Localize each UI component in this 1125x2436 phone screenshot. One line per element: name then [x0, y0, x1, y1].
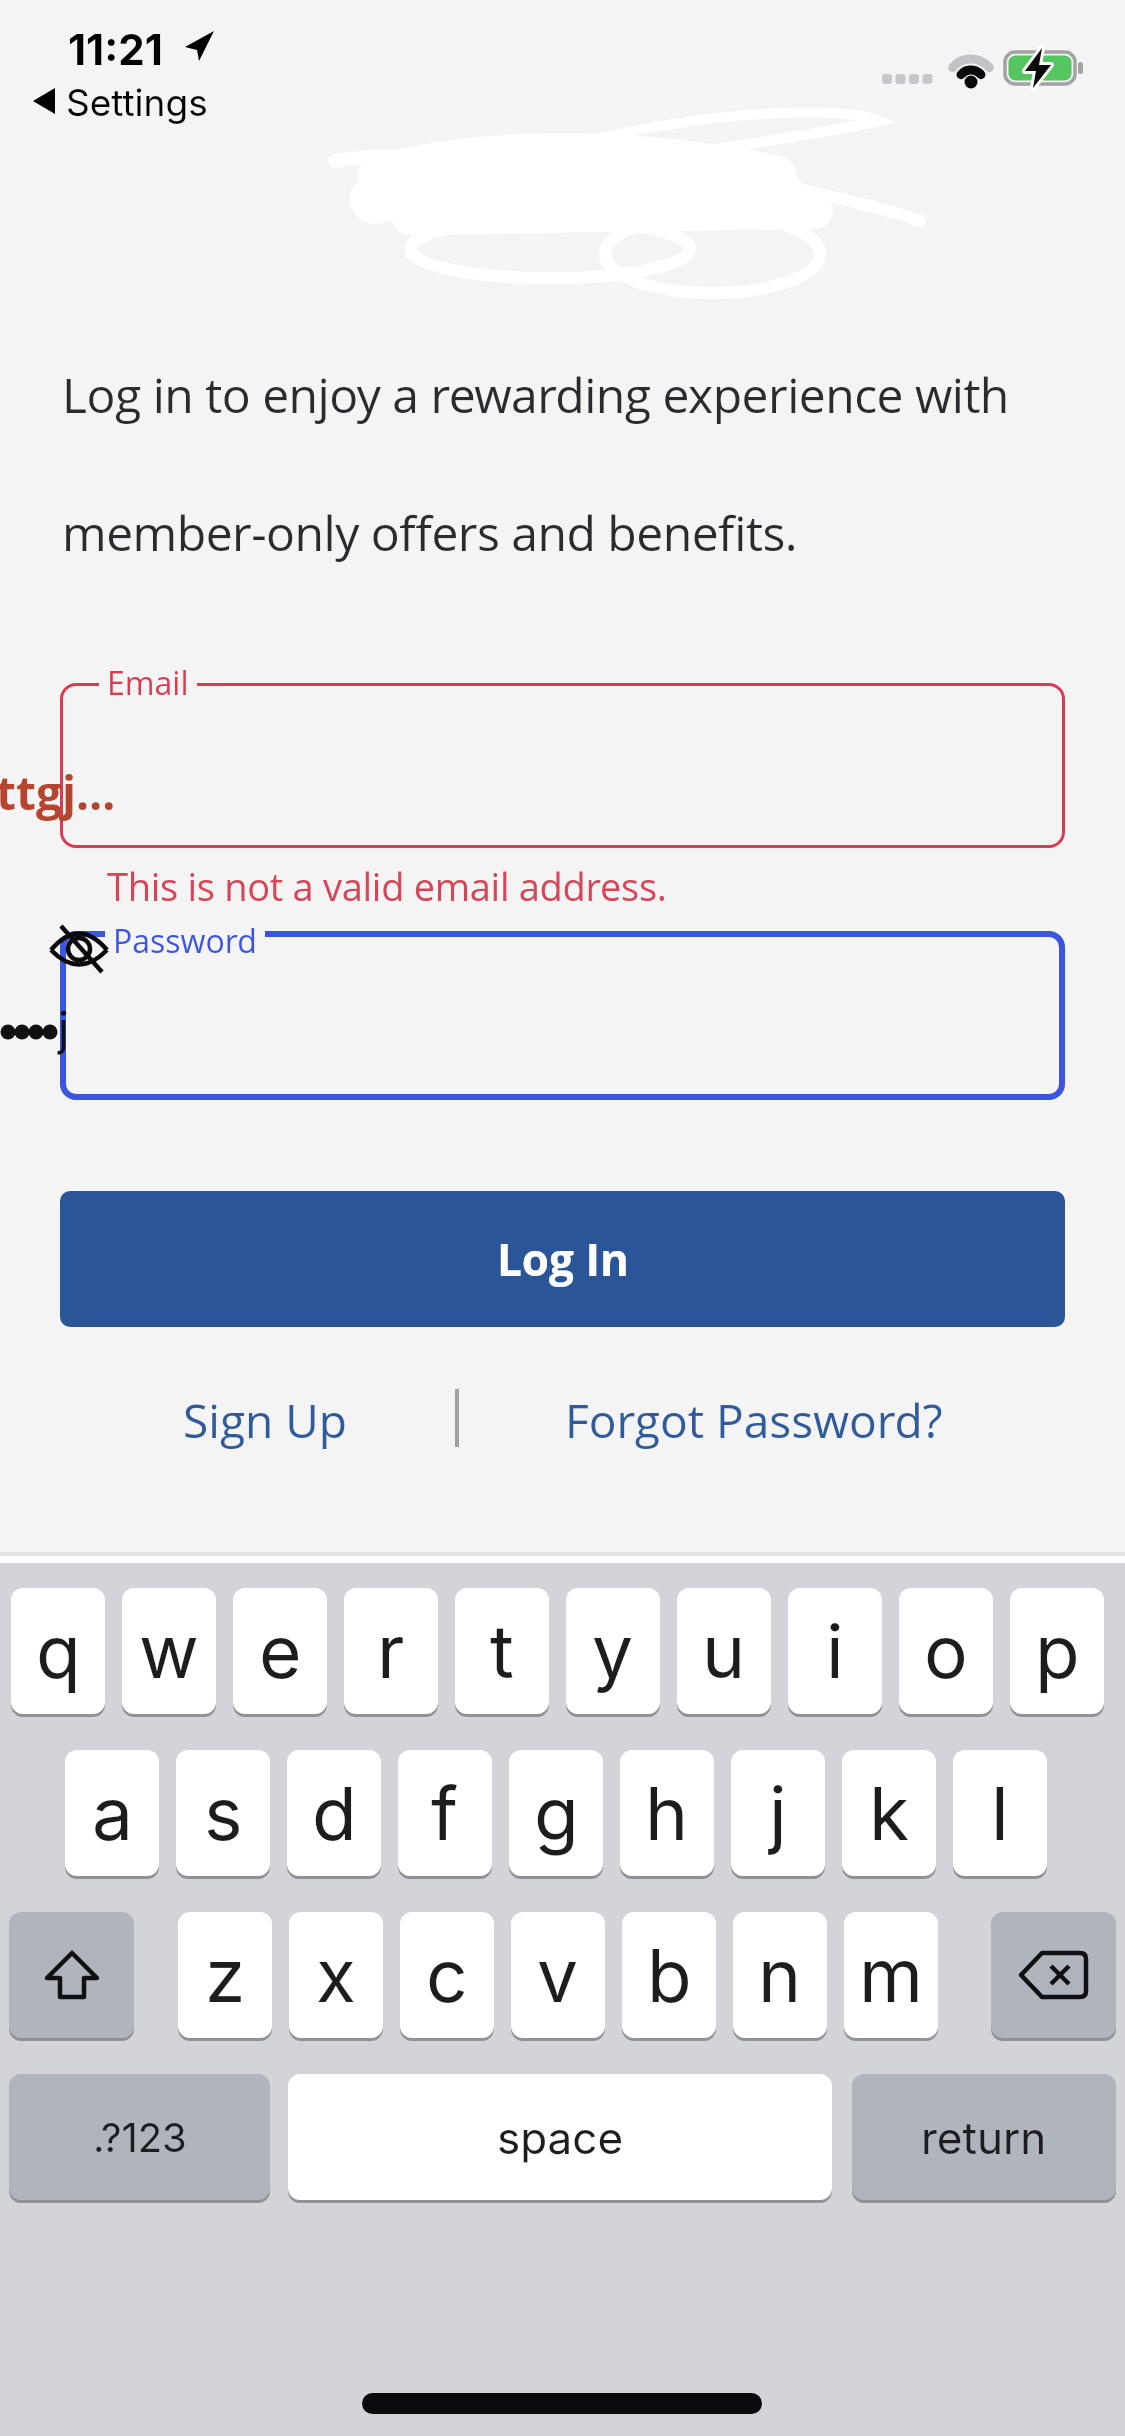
button[interactable]: p	[1010, 1588, 1104, 1714]
button[interactable]: o	[899, 1588, 993, 1714]
staticText: u	[702, 1607, 746, 1695]
staticText: y	[592, 1607, 634, 1695]
button[interactable]: i	[788, 1588, 882, 1714]
button[interactable]: Log In	[60, 1191, 1065, 1327]
button[interactable]: space	[288, 2074, 832, 2200]
button[interactable]: q	[11, 1588, 105, 1714]
staticText: v	[537, 1931, 579, 2019]
button[interactable]: d	[287, 1750, 381, 1876]
staticText: t	[490, 1607, 514, 1695]
button[interactable]: w	[122, 1588, 216, 1714]
staticText: j	[769, 1769, 787, 1857]
button[interactable]: y	[566, 1588, 660, 1714]
staticText: ttgj…	[0, 761, 116, 824]
staticText: n	[758, 1931, 802, 2019]
button[interactable]: Forgot Password?	[514, 1384, 994, 1456]
staticText: g	[534, 1769, 579, 1857]
button[interactable]: g	[509, 1750, 603, 1876]
button[interactable]: m	[844, 1912, 938, 2038]
staticText: Settings	[66, 80, 208, 125]
button[interactable]: j	[731, 1750, 825, 1876]
button[interactable]: n	[733, 1912, 827, 2038]
staticText: Log In	[497, 1229, 629, 1289]
staticText: Password	[113, 919, 257, 963]
staticText: m	[859, 1931, 923, 2019]
staticText: Sign Up	[183, 1389, 347, 1452]
staticText: j	[58, 1000, 70, 1056]
staticText: c	[426, 1931, 468, 2019]
button[interactable]: f	[398, 1750, 492, 1876]
staticText: return	[921, 2111, 1047, 2164]
staticText: w	[139, 1607, 199, 1695]
button[interactable]: s	[176, 1750, 270, 1876]
button[interactable]: t	[455, 1588, 549, 1714]
staticText: member-only offers and benefits.	[62, 500, 798, 565]
staticText: b	[647, 1931, 692, 2019]
button[interactable]: return	[852, 2074, 1116, 2200]
staticText: x	[316, 1931, 356, 2019]
staticText: s	[204, 1769, 243, 1857]
staticText: r	[377, 1607, 405, 1695]
button[interactable]: u	[677, 1588, 771, 1714]
staticText: l	[991, 1769, 1009, 1857]
button[interactable]	[9, 1912, 134, 2038]
button[interactable]: Sign Up	[165, 1384, 365, 1456]
staticText: space	[497, 2111, 624, 2164]
staticText: q	[36, 1607, 81, 1695]
staticText: e	[259, 1607, 302, 1695]
button[interactable]: b	[622, 1912, 716, 2038]
button[interactable]: c	[400, 1912, 494, 2038]
staticText: a	[92, 1769, 133, 1857]
staticText: d	[312, 1769, 357, 1857]
button[interactable]	[60, 931, 1065, 1100]
staticText: f	[431, 1769, 459, 1857]
button[interactable]	[991, 1912, 1116, 2038]
button[interactable]: .?123	[9, 2074, 270, 2200]
staticText: o	[924, 1607, 968, 1695]
button[interactable]: h	[620, 1750, 714, 1876]
staticText: k	[869, 1769, 910, 1857]
button[interactable]: v	[511, 1912, 605, 2038]
staticText: h	[645, 1769, 689, 1857]
button[interactable]	[60, 683, 1065, 848]
button[interactable]: l	[953, 1750, 1047, 1876]
staticText: Forgot Password?	[565, 1389, 943, 1452]
staticText: This is not a valid email address.	[107, 860, 667, 912]
button[interactable]: k	[842, 1750, 936, 1876]
staticText: p	[1035, 1607, 1080, 1695]
staticText: i	[826, 1607, 844, 1695]
button[interactable]: z	[178, 1912, 272, 2038]
button[interactable]: a	[65, 1750, 159, 1876]
staticText: Log in to enjoy a rewarding experience w…	[62, 362, 1009, 427]
staticText: 11:21	[68, 24, 163, 75]
button[interactable]: r	[344, 1588, 438, 1714]
staticText: Email	[107, 661, 189, 705]
staticText: z	[205, 1931, 246, 2019]
button[interactable]: e	[233, 1588, 327, 1714]
button[interactable]: x	[289, 1912, 383, 2038]
staticText: .?123	[93, 2113, 187, 2161]
